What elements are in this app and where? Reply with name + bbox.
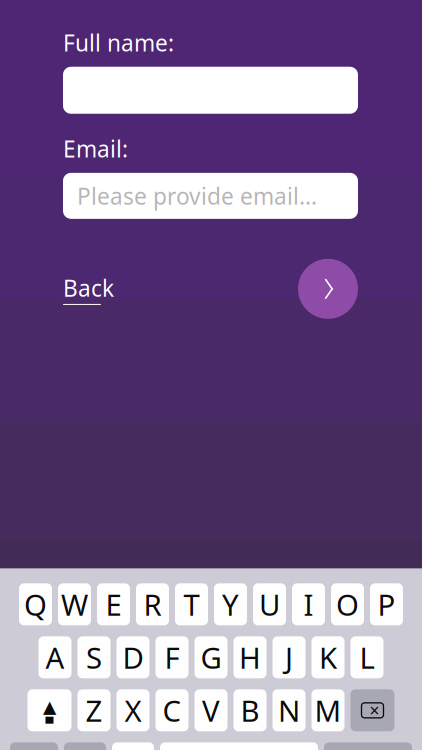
staticText: I [303,585,313,624]
staticText: E [105,585,121,624]
staticText: P [377,585,395,624]
button[interactable]: T [175,583,208,625]
staticText: K [319,638,337,677]
staticText: F [164,638,179,677]
staticText: B [240,691,259,730]
staticText: T [183,585,199,624]
button[interactable]: return [324,742,412,750]
staticText: G [200,638,221,677]
button[interactable]: X [116,689,149,731]
button[interactable]: 123 [10,742,58,750]
staticText: H [239,638,261,677]
button[interactable]: H [233,636,266,678]
staticText: ▲ [43,697,56,717]
button[interactable]: Z [77,689,110,731]
button[interactable] [63,67,358,114]
staticText: C [162,691,181,730]
button[interactable]: U [253,583,286,625]
staticText: Full name: [63,28,174,58]
button[interactable]: Please provide email... [63,173,358,219]
button[interactable]: V [194,689,227,731]
button[interactable]: I [292,583,325,625]
staticText: M [314,691,341,730]
staticText: J [285,638,293,677]
button[interactable]: C [155,689,188,731]
staticText: Email: [63,134,128,164]
staticText: O [336,585,359,624]
button[interactable]: J [272,636,305,678]
button[interactable]: S [77,636,110,678]
staticText: × [369,699,379,722]
button[interactable]: F [155,636,188,678]
staticText: L [359,638,374,677]
button[interactable]: Dictation [112,742,154,750]
button[interactable]: Next [298,259,358,319]
button[interactable]: E [97,583,130,625]
staticText: A [45,638,64,677]
button[interactable]: K [311,636,344,678]
button[interactable]: A [38,636,71,678]
staticText: Q [24,585,47,624]
button[interactable]: W [58,583,91,625]
staticText: X [124,691,141,730]
button[interactable]: Y [214,583,247,625]
button[interactable]: R [136,583,169,625]
button[interactable]: L [350,636,383,678]
staticText: N [278,691,300,730]
staticText: Z [85,691,102,730]
staticText: R [143,585,161,624]
button[interactable]: M [311,689,344,731]
button[interactable]: O [331,583,364,625]
staticText: Please provide email... [77,181,317,211]
button[interactable]: Delete [350,689,394,731]
button[interactable]: N [272,689,305,731]
staticText: V [202,691,220,730]
staticText: Back [63,273,114,303]
button[interactable]: Back [63,273,114,305]
staticText: W [61,585,88,624]
staticText: S [86,638,102,677]
button[interactable]: P [370,583,403,625]
staticText: Y [222,585,239,624]
staticText: D [122,638,143,677]
button[interactable]: D [116,636,149,678]
button[interactable]: B [233,689,266,731]
button[interactable]: G [194,636,227,678]
button[interactable]: Next keyboard [64,742,106,750]
staticText: U [259,585,280,624]
button[interactable]: spacja [160,742,318,750]
button[interactable]: Shift [27,689,71,731]
button[interactable]: Q [19,583,52,625]
